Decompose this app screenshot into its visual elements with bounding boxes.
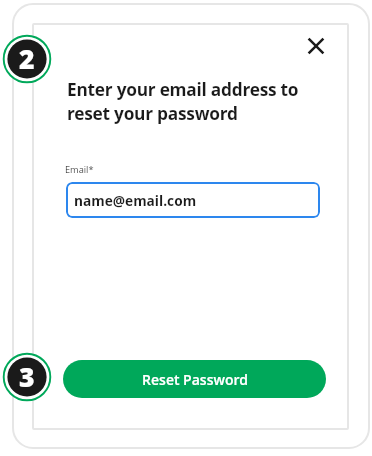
button[interactable]: name@email.com xyxy=(66,182,320,218)
button[interactable]: Close xyxy=(306,36,326,56)
staticText: name@email.com xyxy=(74,191,197,210)
button[interactable]: Reset Password xyxy=(63,360,326,398)
staticText: Reset Password xyxy=(142,370,248,389)
staticText: 2 xyxy=(19,41,35,77)
staticText: Enter your email address to reset your p… xyxy=(67,78,307,126)
staticText: Email* xyxy=(65,163,94,176)
staticText: 3 xyxy=(19,359,35,395)
